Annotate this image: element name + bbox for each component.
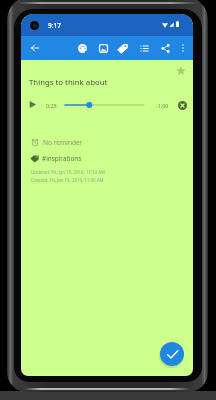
staticText: Things to think about: [29, 77, 108, 88]
button[interactable]: Delete recording: [176, 99, 188, 111]
staticText: Created: Fri, Jan 15, 2016, 11:50 AM: [31, 177, 104, 183]
button[interactable]: Done: [160, 342, 184, 366]
staticText: #inspirations: [42, 154, 82, 163]
button[interactable]: More options: [174, 36, 192, 60]
button[interactable]: Checkboxes: [135, 36, 153, 60]
staticText: 9:17: [48, 21, 61, 30]
button[interactable]: Pin note: [173, 63, 189, 79]
button[interactable]: No reminder: [31, 136, 83, 148]
button[interactable]: Background options: [73, 36, 91, 60]
staticText: -1:00: [156, 102, 169, 109]
button[interactable]: Share: [156, 36, 174, 60]
button[interactable]: Label: [113, 36, 131, 60]
staticText: Updated: Fri, Jan 15, 2016, 11:52 AM: [31, 169, 106, 175]
button[interactable]: Back: [26, 36, 44, 60]
staticText: No reminder: [43, 138, 83, 147]
staticText: 0:25: [46, 102, 57, 109]
button[interactable]: Play recording: [26, 98, 39, 111]
button[interactable]: Add image: [94, 36, 112, 60]
button[interactable]: #inspirations: [30, 152, 82, 164]
